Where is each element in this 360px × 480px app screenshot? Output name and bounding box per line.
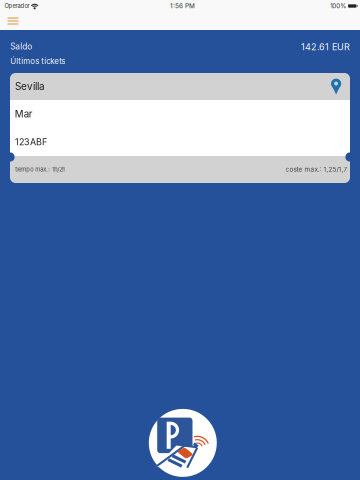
staticText: Operador: [4, 2, 29, 9]
staticText: Mar: [15, 108, 33, 120]
button[interactable]: 123ABF: [10, 128, 350, 156]
staticText: tiempo máx.: 1h/2h: [15, 166, 65, 173]
staticText: 1:56 PM: [170, 2, 195, 10]
staticText: coste máx.: 1,25/1,7: [285, 166, 347, 173]
button[interactable]: Mar: [10, 100, 350, 128]
button[interactable]: Sevilla: [10, 73, 350, 100]
staticText: Saldo: [10, 41, 32, 51]
staticText: Sevilla: [15, 80, 45, 92]
staticText: 142.61 EUR: [301, 41, 350, 52]
staticText: 100%: [330, 2, 346, 10]
button[interactable]: Menu: [0, 12, 26, 30]
staticText: 123ABF: [15, 137, 47, 147]
staticText: Últimos tickets: [10, 56, 65, 66]
